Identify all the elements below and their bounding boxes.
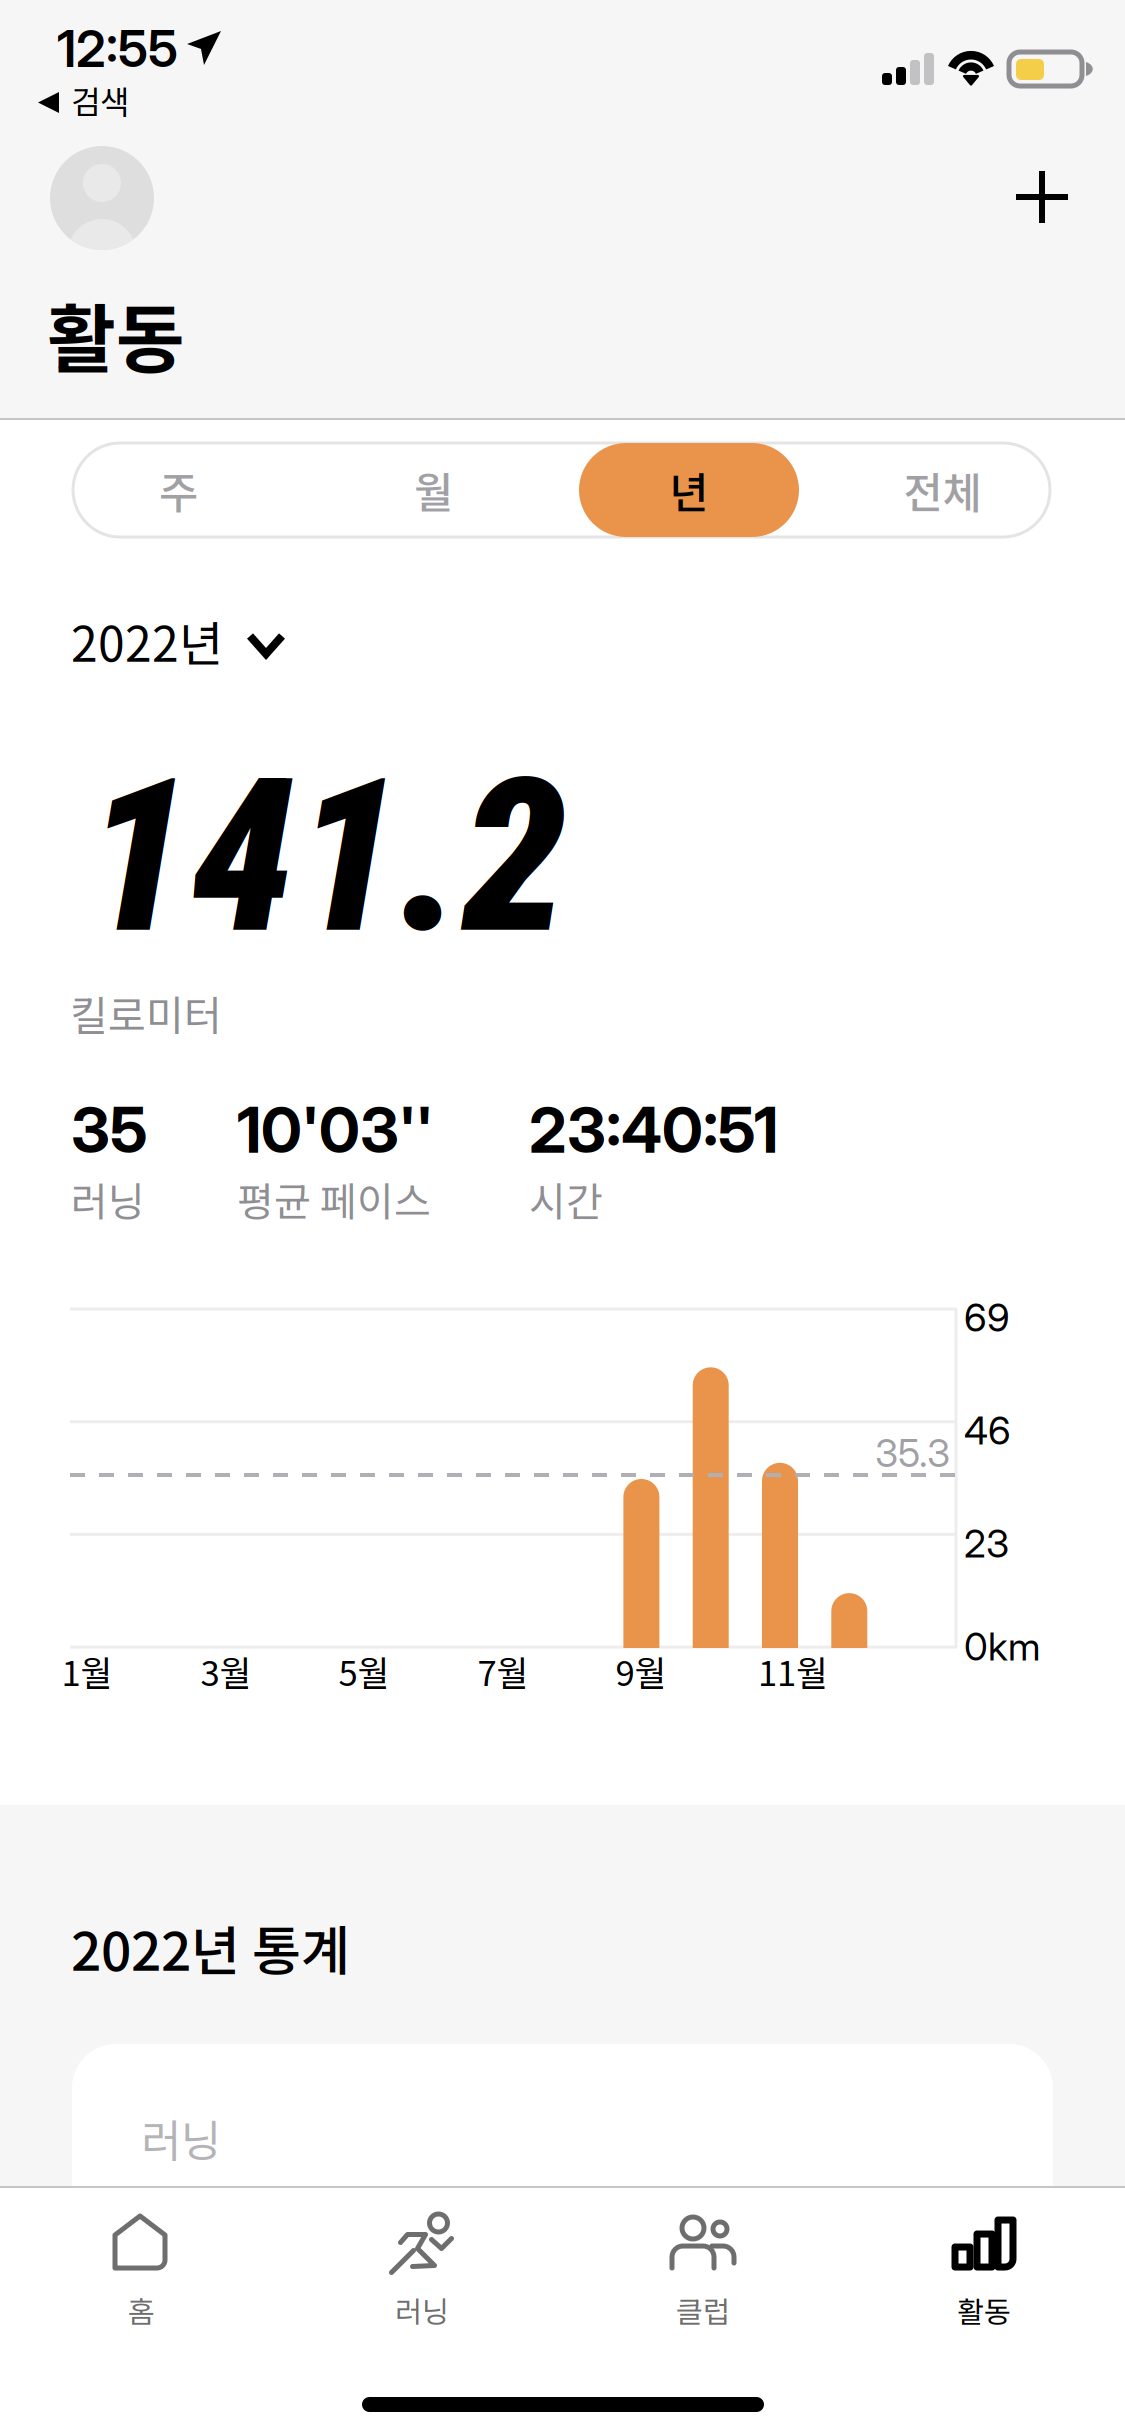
- staticText: 1월: [61, 1646, 112, 1696]
- staticText: 클럽: [676, 2289, 730, 2331]
- button[interactable]: Profile: [0, 0, 1125, 2436]
- staticText: 주: [159, 459, 198, 521]
- button[interactable]: 홈: [0, 0, 1125, 2436]
- button[interactable]: 월: [0, 0, 1125, 2436]
- staticText: 러닝: [395, 2289, 449, 2331]
- button[interactable]: 검색: [0, 0, 1125, 2436]
- button[interactable]: Add: [0, 0, 1125, 2436]
- staticText: 0km: [964, 1623, 1040, 1670]
- button[interactable]: 년: [0, 0, 1125, 2436]
- staticText: 12:55: [57, 18, 178, 79]
- staticText: 35.3: [875, 1430, 950, 1476]
- button[interactable]: 전체: [0, 0, 1125, 2436]
- staticText: 홈: [127, 2289, 154, 2331]
- staticText: 7월: [477, 1646, 528, 1696]
- staticText: 활동: [957, 2289, 1011, 2331]
- staticText: 러닝: [71, 1170, 145, 1228]
- staticText: 전체: [903, 459, 981, 521]
- staticText: 11월: [758, 1646, 828, 1696]
- staticText: 월: [414, 459, 453, 521]
- staticText: 9월: [615, 1646, 666, 1696]
- staticText: 46: [964, 1407, 1011, 1454]
- button[interactable]: 활동: [0, 0, 1125, 2436]
- staticText: 2022년: [71, 606, 223, 675]
- button[interactable]: 러닝: [0, 0, 1125, 2436]
- staticText: 킬로미터: [70, 983, 222, 1043]
- staticText: 년: [669, 459, 708, 521]
- staticText: 23:40:51: [529, 1092, 778, 1168]
- button[interactable]: 주: [0, 0, 1125, 2436]
- staticText: 3월: [200, 1646, 251, 1696]
- button[interactable]: 클럽: [0, 0, 1125, 2436]
- staticText: 러닝: [141, 2106, 221, 2170]
- staticText: 69: [964, 1294, 1010, 1341]
- button[interactable]: 2022년: [0, 0, 1125, 2436]
- staticText: 활동: [47, 280, 185, 388]
- staticText: 141.2: [85, 733, 567, 981]
- staticText: 5월: [338, 1646, 389, 1696]
- staticText: 10'03'': [237, 1092, 433, 1168]
- staticText: 23: [964, 1520, 1009, 1567]
- staticText: 평균 페이스: [237, 1170, 431, 1228]
- staticText: 검색: [71, 77, 129, 123]
- staticText: 시간: [529, 1170, 603, 1228]
- staticText: 2022년 통계: [71, 1909, 350, 1986]
- staticText: 35: [71, 1092, 148, 1168]
